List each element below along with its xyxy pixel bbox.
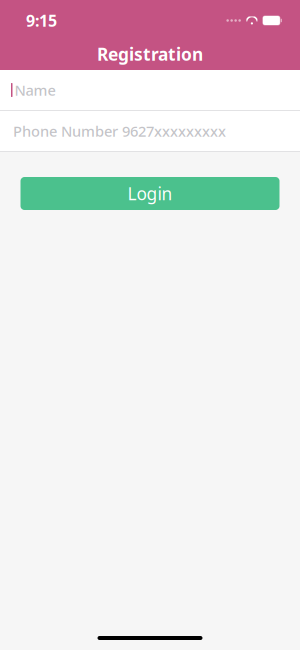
staticText: Name bbox=[14, 80, 55, 100]
staticText: 9:15 bbox=[26, 10, 57, 31]
button[interactable]: Name bbox=[0, 70, 300, 110]
button[interactable]: Login bbox=[20, 177, 279, 210]
staticText: Login bbox=[127, 182, 172, 205]
button[interactable]: Phone Number 9627xxxxxxxxx bbox=[0, 111, 300, 151]
staticText: Registration bbox=[97, 42, 203, 65]
staticText: Phone Number 9627xxxxxxxxx bbox=[13, 121, 226, 141]
